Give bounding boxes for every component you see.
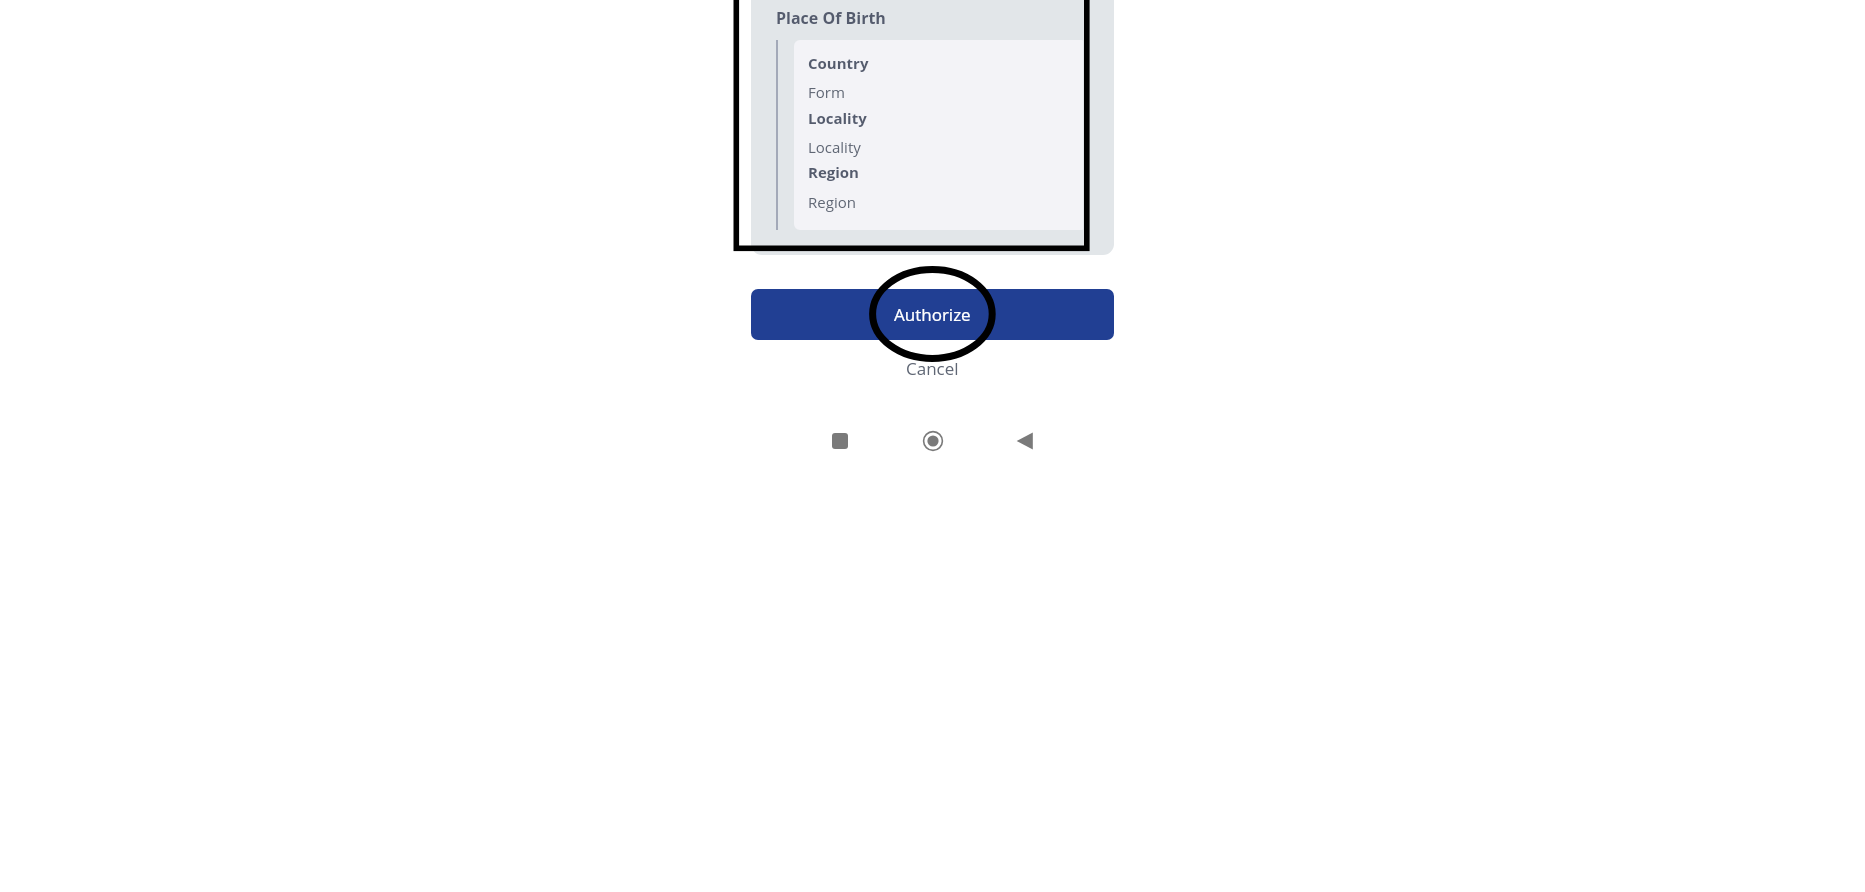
staticText: Locality bbox=[808, 137, 861, 157]
button[interactable]: Authorize bbox=[751, 289, 1114, 340]
button[interactable]: Home bbox=[914, 422, 951, 459]
staticText: Locality bbox=[808, 108, 867, 128]
button[interactable]: Cancel bbox=[880, 352, 985, 384]
button[interactable]: Back bbox=[1006, 422, 1043, 459]
staticText: Cancel bbox=[906, 357, 959, 380]
staticText: Region bbox=[808, 192, 856, 212]
staticText: Authorize bbox=[894, 303, 971, 326]
staticText: Region bbox=[808, 162, 859, 182]
staticText: Form bbox=[808, 82, 845, 102]
staticText: Country bbox=[808, 53, 869, 73]
button[interactable]: Recent apps bbox=[821, 422, 858, 459]
staticText: Place Of Birth bbox=[776, 7, 886, 29]
